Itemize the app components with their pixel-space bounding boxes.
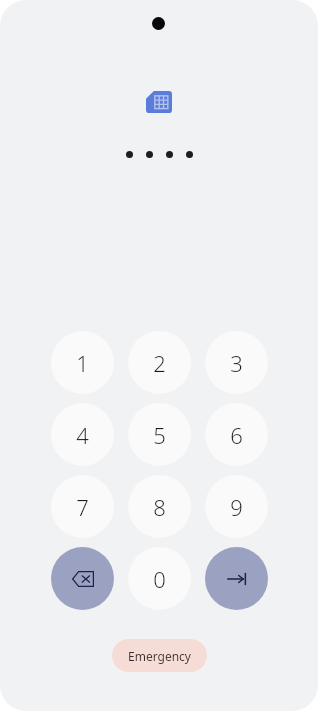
button[interactable]: 8 [128,475,191,538]
button[interactable]: Enter [205,547,268,610]
button[interactable]: 6 [205,403,268,466]
staticText: 1 [76,348,89,378]
button[interactable]: 5 [128,403,191,466]
button[interactable]: 9 [205,475,268,538]
staticText: 6 [230,420,243,450]
button[interactable]: 7 [51,475,114,538]
staticText: 3 [230,348,243,378]
staticText: 8 [153,492,166,522]
staticText: 2 [153,348,166,378]
staticText: 9 [230,492,243,522]
button[interactable]: 0 [128,547,191,610]
button[interactable]: 2 [128,331,191,394]
button[interactable]: 1 [51,331,114,394]
button[interactable]: 3 [205,331,268,394]
button[interactable]: Delete [51,547,114,610]
button[interactable]: Emergency [112,639,207,672]
staticText: 4 [76,420,89,450]
button[interactable]: 4 [51,403,114,466]
staticText: 5 [153,420,166,450]
staticText: 7 [76,492,89,522]
staticText: Emergency [128,648,191,664]
staticText: 0 [153,564,166,594]
